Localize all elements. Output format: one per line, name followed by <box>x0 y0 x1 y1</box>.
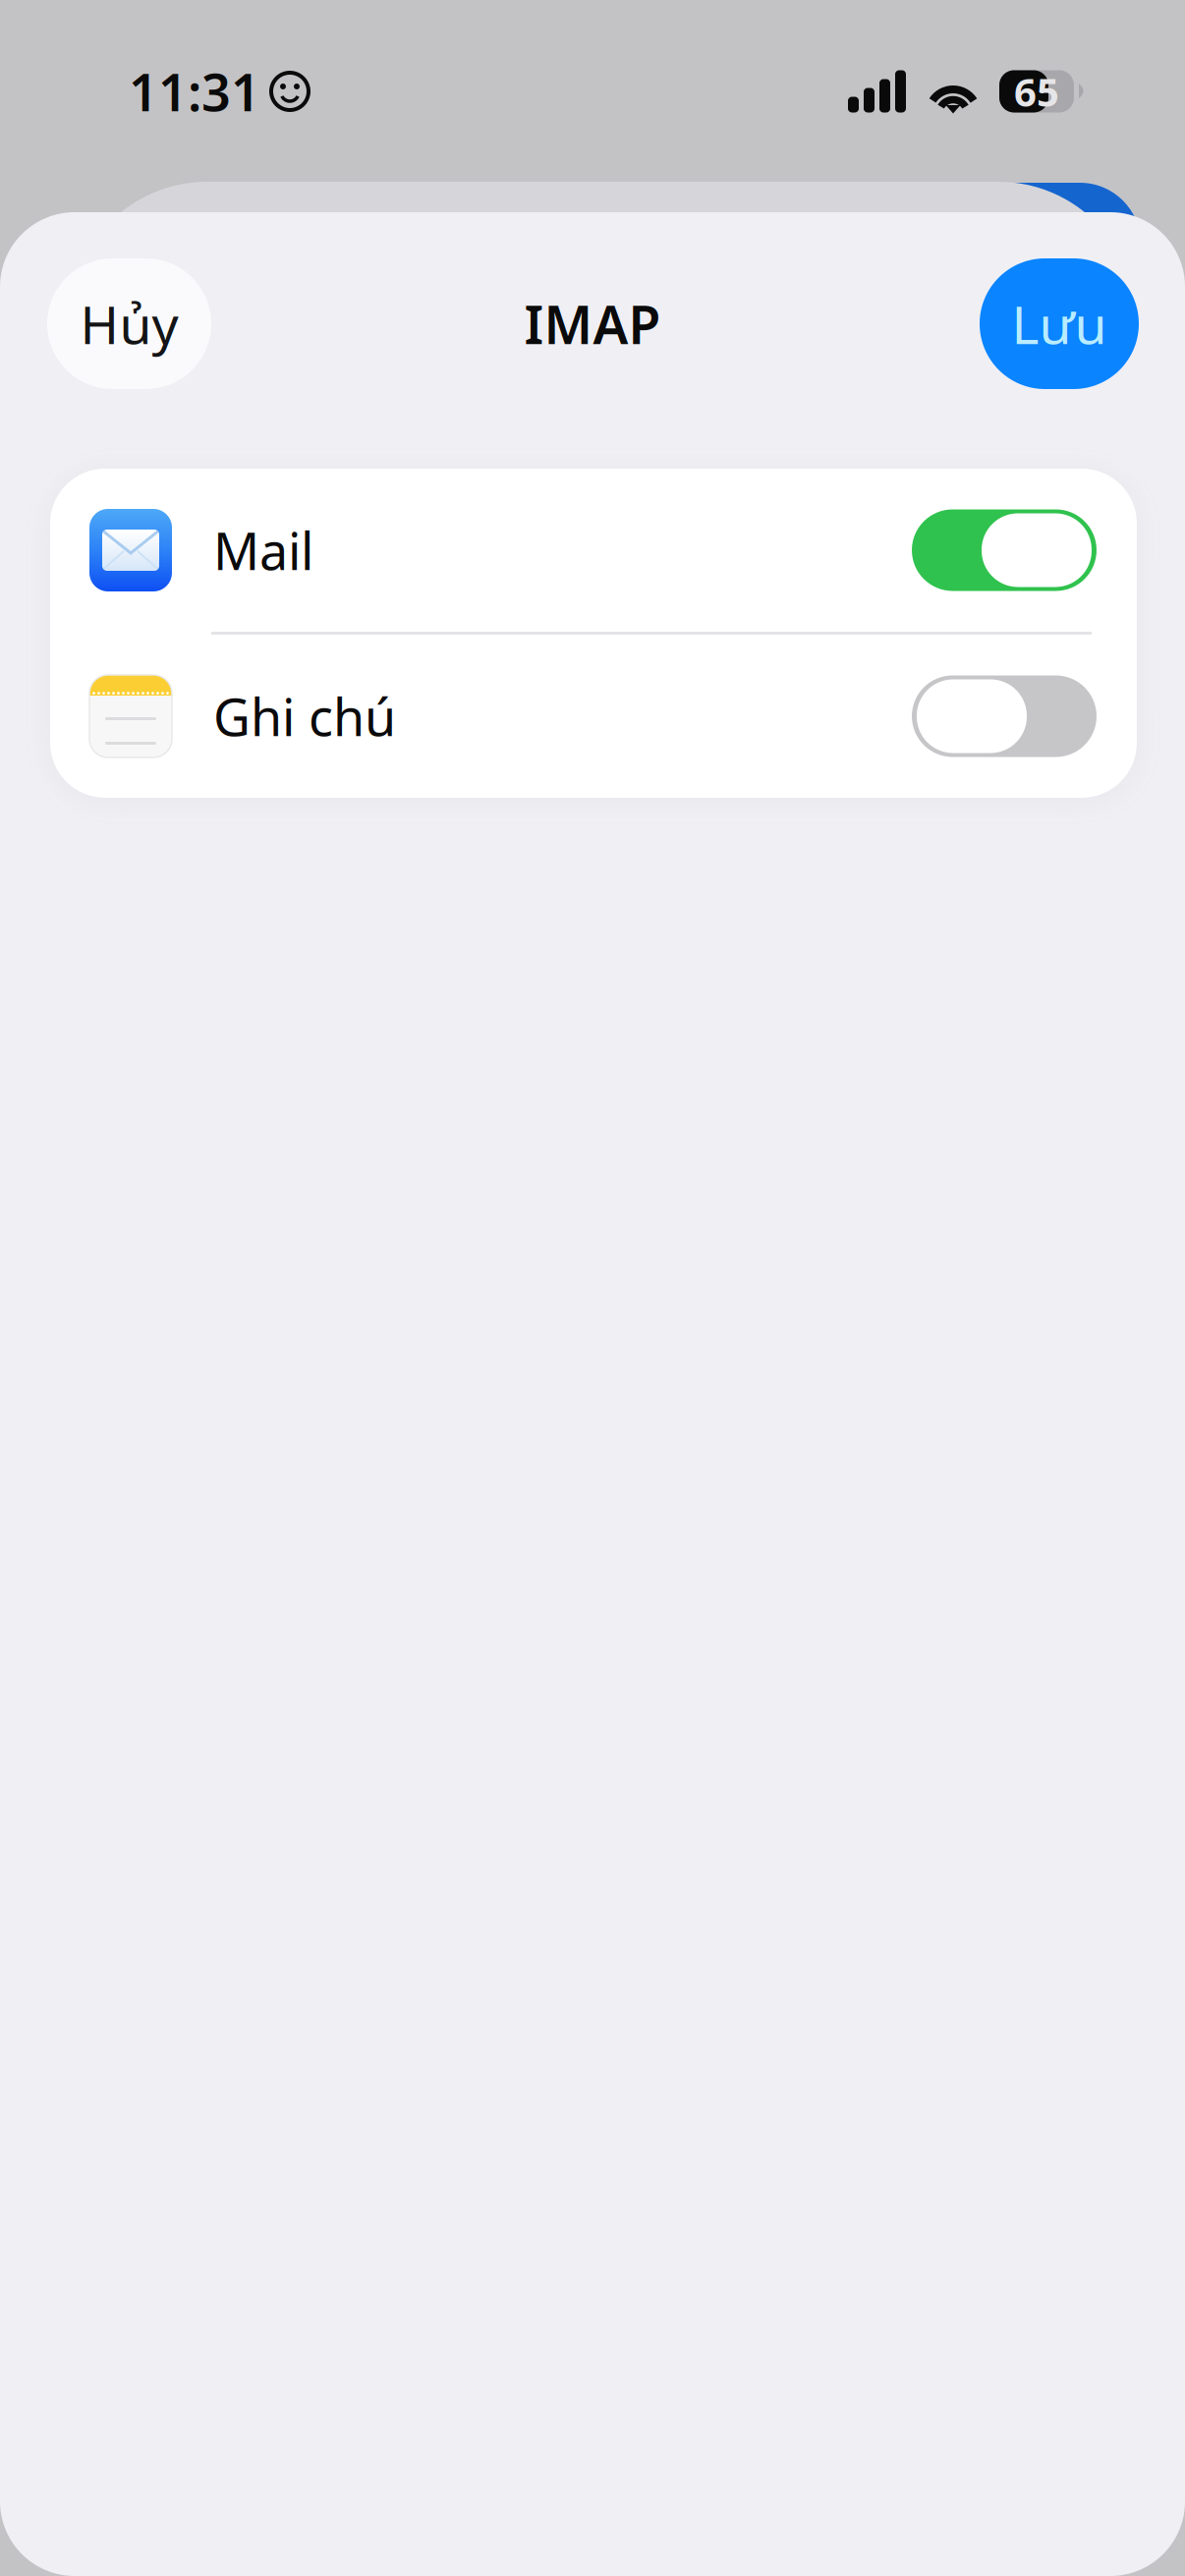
button[interactable]: Mail <box>50 469 1137 632</box>
staticText: Mail <box>213 516 313 584</box>
staticText: 11:31 <box>129 57 260 125</box>
button[interactable]: Ghi chú <box>50 635 1137 798</box>
staticText: Lưu <box>1012 289 1107 358</box>
staticText: IMAP <box>524 289 661 358</box>
staticText: 65 <box>1014 65 1059 117</box>
button[interactable]: Lưu <box>980 258 1139 389</box>
button[interactable]: Hủy <box>47 258 211 389</box>
staticText: Ghi chú <box>213 682 396 750</box>
staticText: Hủy <box>80 289 178 358</box>
